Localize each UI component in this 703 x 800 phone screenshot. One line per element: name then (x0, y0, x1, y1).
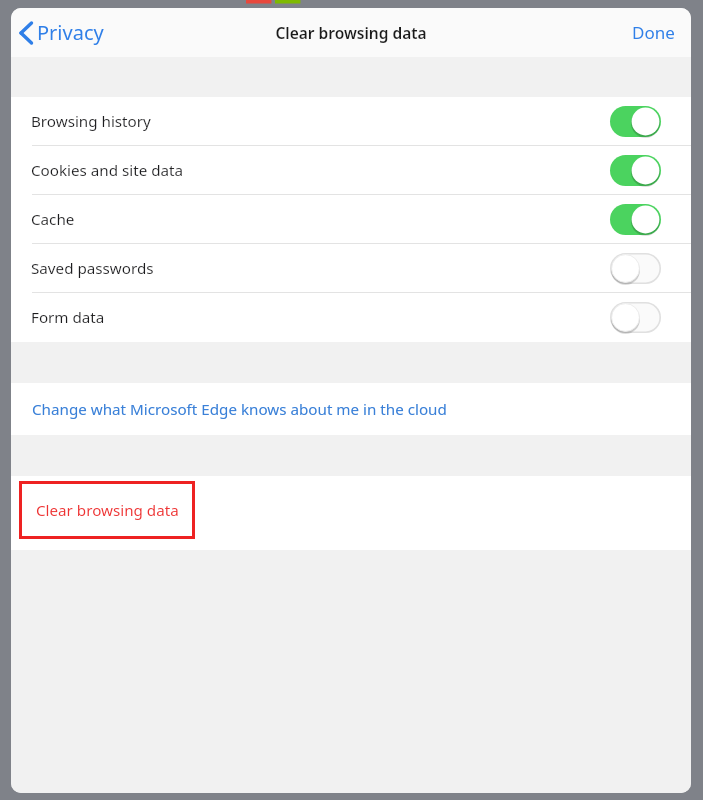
staticText: Browsing history (31, 111, 151, 132)
button[interactable]: Change what Microsoft Edge knows about m… (11, 383, 691, 435)
staticText: Done (632, 21, 675, 44)
staticText: Clear browsing data (36, 500, 179, 521)
button[interactable]: Toggle on (610, 106, 661, 137)
button[interactable]: Back (11, 15, 114, 50)
staticText: Clear browsing data (275, 22, 427, 43)
staticText: Change what Microsoft Edge knows about m… (32, 399, 447, 420)
button[interactable]: Form data (11, 293, 691, 342)
button[interactable]: Toggle on (610, 204, 661, 235)
button[interactable]: Clear browsing data (19, 481, 195, 539)
button[interactable]: Cache (11, 195, 691, 244)
button[interactable]: Toggle on (610, 155, 661, 186)
staticText: Saved passwords (31, 258, 154, 279)
button[interactable]: Saved passwords (11, 244, 691, 293)
staticText: Form data (31, 307, 105, 328)
button[interactable]: Toggle off (610, 253, 661, 284)
button[interactable]: Toggle off (610, 302, 661, 333)
staticText: Privacy (37, 19, 104, 46)
staticText: Cookies and site data (31, 160, 184, 181)
other: Back (19, 21, 33, 45)
button[interactable]: Cookies and site data (11, 146, 691, 195)
button[interactable]: Done (616, 13, 691, 52)
staticText: Cache (31, 209, 75, 230)
button[interactable]: Browsing history (11, 97, 691, 146)
